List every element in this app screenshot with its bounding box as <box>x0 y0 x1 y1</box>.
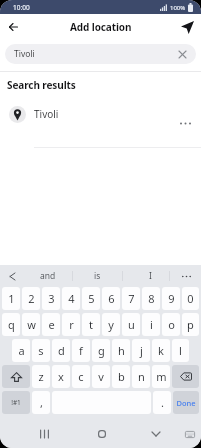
button[interactable] <box>178 18 196 36</box>
button[interactable]: 5 <box>82 287 100 310</box>
button[interactable]: d <box>52 339 70 362</box>
button[interactable]: n <box>132 365 150 388</box>
button[interactable]: , <box>32 391 50 414</box>
button[interactable]: p <box>182 313 199 336</box>
button[interactable]: Done <box>173 391 199 414</box>
staticText: y <box>108 317 114 332</box>
button[interactable]: q <box>2 313 20 336</box>
button[interactable]: and <box>34 265 62 287</box>
staticText: I <box>149 270 152 282</box>
button[interactable]: w <box>22 313 40 336</box>
button[interactable] <box>34 424 54 444</box>
button[interactable]: t <box>82 313 100 336</box>
button[interactable]: e <box>42 313 60 336</box>
button[interactable] <box>92 424 112 444</box>
button[interactable]: Tivoli <box>0 98 201 147</box>
button[interactable]: z <box>32 365 50 388</box>
staticText: z <box>38 369 44 384</box>
staticText: v <box>98 369 104 384</box>
staticText: g <box>98 343 105 358</box>
button[interactable]: 0 <box>182 287 199 310</box>
staticText: w <box>27 317 36 332</box>
button[interactable]: c <box>72 365 90 388</box>
button[interactable]: 9 <box>162 287 180 310</box>
staticText: k <box>158 343 164 358</box>
staticText: 5 <box>88 291 95 306</box>
button[interactable]: g <box>92 339 110 362</box>
button[interactable] <box>176 265 196 287</box>
staticText: 8 <box>148 291 155 306</box>
button[interactable]: x <box>52 365 70 388</box>
button[interactable]: y <box>102 313 120 336</box>
staticText: e <box>48 317 55 332</box>
staticText: Tivoli <box>34 107 59 121</box>
button[interactable]: I <box>138 265 162 287</box>
staticText: s <box>38 343 44 358</box>
button[interactable] <box>172 365 199 388</box>
staticText: r <box>69 317 74 332</box>
staticText: and <box>40 270 56 282</box>
button[interactable]: h <box>112 339 130 362</box>
staticText: n <box>138 369 145 384</box>
staticText: x <box>58 369 64 384</box>
button[interactable]: . <box>153 391 171 414</box>
staticText: h <box>118 343 125 358</box>
button[interactable]: k <box>152 339 170 362</box>
button[interactable]: 3 <box>42 287 60 310</box>
staticText: m <box>156 369 167 384</box>
button[interactable]: i <box>142 313 160 336</box>
button[interactable]: j <box>132 339 150 362</box>
staticText: 3 <box>48 291 55 306</box>
staticText: q <box>8 317 15 332</box>
staticText: c <box>78 369 84 384</box>
staticText: 100% <box>170 4 186 12</box>
button[interactable]: 4 <box>62 287 80 310</box>
button[interactable] <box>4 18 22 36</box>
staticText: j <box>140 343 143 358</box>
staticText: 10:00 <box>13 3 30 12</box>
staticText: p <box>187 317 194 332</box>
staticText: f <box>79 343 83 358</box>
staticText: 0 <box>187 291 194 306</box>
staticText: !#1 <box>11 398 21 407</box>
staticText: . <box>161 395 164 410</box>
button[interactable]: f <box>72 339 90 362</box>
button[interactable]: a <box>12 339 30 362</box>
button[interactable]: 6 <box>102 287 120 310</box>
button[interactable] <box>180 424 200 444</box>
button[interactable]: 2 <box>22 287 40 310</box>
button[interactable] <box>4 265 20 287</box>
button[interactable]: 7 <box>122 287 140 310</box>
staticText: Done <box>176 398 196 408</box>
staticText: 6 <box>108 291 115 306</box>
button[interactable] <box>2 365 30 388</box>
staticText: 9 <box>168 291 175 306</box>
button[interactable]: is <box>84 265 110 287</box>
staticText: Search results <box>7 78 76 92</box>
button[interactable]: v <box>92 365 110 388</box>
button[interactable]: s <box>32 339 50 362</box>
staticText: Tivoli <box>14 48 35 60</box>
staticText: o <box>168 317 175 332</box>
button[interactable]: !#1 <box>2 391 30 414</box>
button[interactable]: u <box>122 313 140 336</box>
button[interactable]: r <box>62 313 80 336</box>
button[interactable]: 1 <box>2 287 20 310</box>
staticText: is <box>94 270 101 282</box>
staticText: 7 <box>128 291 135 306</box>
button[interactable]: 8 <box>142 287 160 310</box>
button[interactable] <box>146 424 166 444</box>
staticText: 1 <box>8 291 15 306</box>
button[interactable]: Tivoli <box>5 44 196 64</box>
staticText: 4 <box>68 291 75 306</box>
staticText: l <box>179 343 182 358</box>
staticText: a <box>18 343 25 358</box>
staticText: , <box>40 395 43 410</box>
staticText: u <box>128 317 135 332</box>
button[interactable]: m <box>152 365 170 388</box>
button[interactable]: b <box>112 365 130 388</box>
staticText: b <box>118 369 125 384</box>
button[interactable]: o <box>162 313 180 336</box>
button[interactable]: l <box>172 339 189 362</box>
